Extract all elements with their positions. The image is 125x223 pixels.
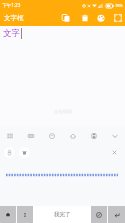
button[interactable]: Delete: [77, 10, 93, 26]
button[interactable]: Voice input: [91, 206, 107, 223]
button[interactable]: 我完了: [33, 206, 91, 223]
staticText: 我完了: [54, 211, 71, 218]
button[interactable]: Close: [108, 146, 121, 159]
button[interactable]: Punctuation: [17, 206, 33, 223]
button[interactable]: Color: [93, 10, 109, 26]
staticText: 文字框: [4, 14, 24, 22]
button[interactable]: Clipboard: [20, 129, 41, 143]
button[interactable]: Grid: [0, 129, 20, 143]
staticText: 点击编辑: [54, 109, 72, 115]
button[interactable]: Enter: [108, 206, 125, 223]
button[interactable]: Collapse: [104, 129, 125, 143]
button[interactable]: Cloud: [62, 129, 83, 143]
button[interactable]: Emoji: [41, 129, 62, 143]
button[interactable]: Fullscreen: [110, 10, 125, 26]
button[interactable]: Notes: [83, 129, 104, 143]
button[interactable]: Delete: [19, 147, 30, 158]
button[interactable]: Emoji keyboard: [0, 206, 16, 223]
staticText: 76%: [115, 3, 123, 8]
button[interactable]: Link: [4, 147, 15, 158]
button[interactable]: Copy: [58, 10, 74, 26]
staticText: 下午1:23: [2, 2, 21, 8]
staticText: 文字: [3, 28, 20, 39]
